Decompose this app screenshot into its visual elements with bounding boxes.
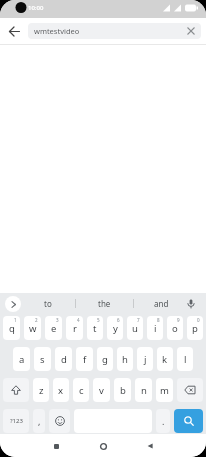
staticText: k [162,353,168,366]
staticText: s [40,353,45,366]
staticText: y [113,322,118,335]
button[interactable]: a [13,347,30,371]
staticText: 3 [56,317,59,323]
staticText: ?123 [10,417,23,425]
button[interactable]: n [135,378,152,402]
button[interactable]: u [127,316,143,340]
button[interactable]: k [157,347,173,371]
button[interactable] [49,409,70,433]
button[interactable]: o [167,316,183,340]
staticText: to [44,298,52,309]
button[interactable]: q [3,316,20,340]
staticText: h [122,353,128,366]
staticText: o [172,322,178,335]
button[interactable]: v [93,378,110,402]
staticText: , [38,415,41,427]
staticText: 4 [77,317,80,323]
button[interactable]: x [53,378,69,402]
button[interactable] [142,438,158,454]
staticText: and [154,298,169,309]
staticText: p [192,322,198,335]
staticText: wmtestvideo [34,26,80,36]
staticText: 1 [14,317,17,323]
staticText: m [160,384,169,397]
button[interactable]: . [156,409,170,433]
staticText: u [132,322,138,335]
staticText: b [120,384,126,397]
staticText: f [83,353,87,366]
staticText: 8 [157,317,160,323]
staticText: 10:00 [28,4,44,12]
staticText: c [79,384,84,397]
button[interactable] [48,438,64,454]
button[interactable]: d [55,347,72,371]
staticText: 5 [97,317,100,323]
button[interactable] [3,378,29,402]
staticText: the [98,298,111,309]
staticText: w [29,322,37,335]
button[interactable] [177,378,203,402]
button[interactable] [174,409,203,433]
button[interactable]: z [33,378,49,402]
button[interactable]: w [24,316,41,340]
staticText: 0 [197,317,200,323]
button[interactable]: to [22,293,74,314]
button[interactable]: l [177,347,193,371]
staticText: . [162,415,165,427]
button[interactable]: and [135,293,187,314]
button[interactable]: p [187,316,203,340]
button[interactable] [95,438,111,454]
staticText: 9 [177,317,180,323]
staticText: z [39,384,44,397]
button[interactable]: f [76,347,93,371]
staticText: t [93,322,97,335]
button[interactable] [5,296,21,312]
button[interactable]: j [137,347,153,371]
button[interactable]: g [97,347,113,371]
staticText: l [184,353,187,366]
staticText: d [61,353,67,366]
button[interactable]: i [147,316,163,340]
button[interactable]: b [114,378,131,402]
button[interactable]: the [76,293,132,314]
staticText: q [9,322,15,335]
button[interactable]: , [33,409,45,433]
button[interactable]: t [87,316,103,340]
staticText: r [73,322,77,335]
staticText: v [99,384,104,397]
staticText: g [102,353,108,366]
button[interactable] [182,295,200,313]
staticText: a [19,353,25,366]
button[interactable]: m [156,378,173,402]
button[interactable]: r [66,316,83,340]
button[interactable] [4,21,24,41]
button[interactable]: h [117,347,133,371]
button[interactable]: wmtestvideo [28,23,201,39]
staticText: j [144,353,147,366]
button[interactable]: ?123 [3,409,29,433]
staticText: 6 [117,317,120,323]
staticText: x [58,384,64,397]
button[interactable]: e [45,316,62,340]
button[interactable]: c [73,378,89,402]
button[interactable]: s [34,347,51,371]
staticText: 2 [35,317,38,323]
button[interactable]: y [107,316,123,340]
staticText: e [51,322,57,335]
staticText: n [141,384,147,397]
staticText: i [154,322,157,335]
staticText: 7 [137,317,140,323]
